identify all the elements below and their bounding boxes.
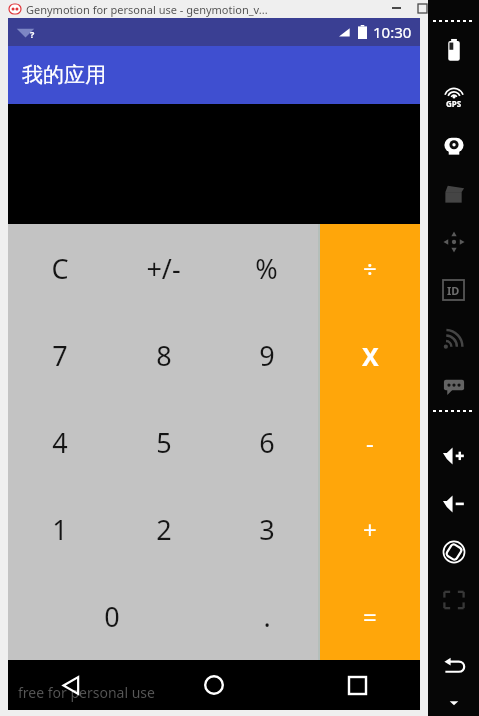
button[interactable]: 5 (112, 399, 215, 486)
button[interactable]: Battery (428, 26, 479, 74)
staticText: 7 (52, 337, 68, 374)
button[interactable]: C (8, 224, 112, 312)
button[interactable]: Rotate (428, 528, 479, 576)
button[interactable]: 7 (8, 312, 112, 399)
staticText: 1 (52, 511, 68, 548)
staticText: free for personal use (18, 683, 155, 702)
button[interactable]: Back (48, 662, 94, 708)
button[interactable]: 9 (215, 312, 318, 399)
button[interactable]: + (320, 486, 420, 573)
staticText: 2 (156, 511, 172, 548)
staticText: 4 (52, 424, 68, 461)
staticText: + (363, 513, 377, 546)
button[interactable]: Phone and SMS (428, 362, 479, 410)
button[interactable]: Network (428, 314, 479, 362)
staticText: 3 (259, 511, 275, 548)
button[interactable]: . (215, 573, 318, 660)
button[interactable]: 1 (8, 486, 112, 573)
button[interactable]: % (215, 224, 318, 312)
staticText: 我的应用 (22, 62, 106, 88)
button[interactable]: 2 (112, 486, 215, 573)
staticText: ID (447, 283, 460, 298)
staticText: GPS (446, 98, 462, 109)
staticText: 5 (156, 424, 172, 461)
staticText: 9 (259, 337, 275, 374)
staticText: 0 (104, 598, 120, 635)
staticText: 6 (259, 424, 275, 461)
button[interactable]: 4 (8, 399, 112, 486)
button[interactable]: Maximize (409, 0, 435, 16)
button[interactable]: Home (191, 662, 237, 708)
button[interactable]: Identifiers (428, 266, 479, 314)
button[interactable]: 0 (8, 573, 215, 660)
staticText: 10:30 (373, 22, 412, 42)
staticText: C (51, 250, 69, 287)
button[interactable]: Video recording (428, 170, 479, 218)
staticText: X (362, 339, 379, 373)
button[interactable]: 3 (215, 486, 318, 573)
staticText: Genymotion for personal use - genymotion… (26, 2, 268, 17)
button[interactable]: +/- (112, 224, 215, 312)
button[interactable]: Camera (428, 122, 479, 170)
button[interactable]: Volume up (428, 432, 479, 480)
staticText: . (263, 598, 271, 635)
button[interactable]: = (320, 573, 420, 660)
button[interactable]: GPS (428, 74, 479, 122)
button[interactable]: Minimize (383, 0, 409, 16)
staticText: +/- (146, 250, 181, 287)
button[interactable]: Fullscreen (428, 576, 479, 624)
button[interactable]: 6 (215, 399, 318, 486)
staticText: ? (30, 28, 35, 40)
staticText: % (255, 250, 278, 287)
button[interactable]: 8 (112, 312, 215, 399)
staticText: ÷ (363, 252, 377, 285)
button[interactable]: Back (428, 642, 479, 690)
button[interactable]: X (320, 312, 420, 399)
button[interactable]: - (320, 399, 420, 486)
staticText: 8 (156, 337, 172, 374)
button[interactable]: Recent apps (334, 662, 380, 708)
button[interactable]: Multi touch (428, 218, 479, 266)
staticText: - (366, 426, 374, 459)
button[interactable]: ÷ (320, 224, 420, 312)
button[interactable]: More (428, 690, 479, 716)
button[interactable]: Volume down (428, 480, 479, 528)
staticText: = (363, 600, 377, 633)
